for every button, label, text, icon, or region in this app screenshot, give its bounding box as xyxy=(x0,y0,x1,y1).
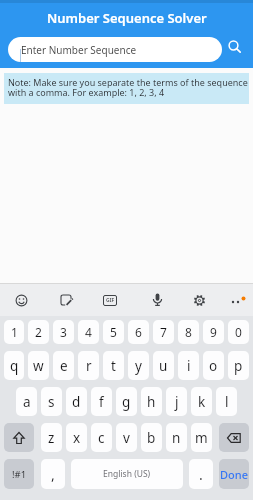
button[interactable]: , xyxy=(41,459,65,489)
button[interactable]: e xyxy=(53,351,74,380)
button[interactable] xyxy=(192,293,207,308)
staticText: English (US) xyxy=(103,468,151,480)
staticText: m xyxy=(195,429,208,447)
staticText: s xyxy=(48,393,55,411)
staticText: i xyxy=(187,357,191,375)
staticText: 2 xyxy=(35,324,42,340)
button[interactable]: GIF xyxy=(103,295,117,306)
button[interactable]: Done xyxy=(219,459,249,489)
button[interactable]: 2 xyxy=(28,320,49,344)
button[interactable]: 3 xyxy=(53,320,74,344)
staticText: Enter Number Sequence xyxy=(21,43,137,57)
staticText: h xyxy=(147,393,156,411)
staticText: 8 xyxy=(185,324,192,340)
staticText: k xyxy=(198,393,206,411)
staticText: d xyxy=(72,393,81,411)
staticText: Number Sequence Solver xyxy=(47,9,207,27)
staticText: q xyxy=(10,357,19,375)
staticText: u xyxy=(159,357,168,375)
button[interactable]: 1 xyxy=(4,320,24,344)
button[interactable]: b xyxy=(141,423,162,452)
button[interactable] xyxy=(219,423,249,452)
staticText: c xyxy=(98,429,105,447)
button[interactable]: f xyxy=(91,387,112,416)
button[interactable]: g xyxy=(116,387,137,416)
staticText: o xyxy=(209,357,218,375)
staticText: g xyxy=(122,393,131,411)
staticText: a xyxy=(23,393,31,411)
staticText: 9 xyxy=(210,324,217,340)
button[interactable]: u xyxy=(153,351,174,380)
button[interactable] xyxy=(14,293,29,308)
staticText: Note: Make sure you separate the terms o… xyxy=(8,76,248,99)
staticText: , xyxy=(51,465,55,484)
button[interactable]: Enter Number Sequence xyxy=(8,37,222,62)
staticText: 4 xyxy=(85,324,92,340)
staticText: 0 xyxy=(235,324,242,340)
staticText: 1 xyxy=(11,324,18,340)
button[interactable]: r xyxy=(78,351,99,380)
staticText: t xyxy=(111,357,116,375)
button[interactable] xyxy=(59,293,74,308)
staticText: j xyxy=(175,393,179,411)
button[interactable]: m xyxy=(191,423,212,452)
button[interactable]: d xyxy=(66,387,87,416)
button[interactable] xyxy=(228,293,248,308)
button[interactable]: w xyxy=(28,351,49,380)
button[interactable]: 7 xyxy=(153,320,174,344)
staticText: GIF xyxy=(106,297,115,304)
staticText: y xyxy=(135,357,142,375)
staticText: l xyxy=(225,393,229,411)
button[interactable]: a xyxy=(16,387,37,416)
button[interactable]: p xyxy=(228,351,249,380)
staticText: v xyxy=(123,429,130,447)
button[interactable]: v xyxy=(116,423,137,452)
button[interactable]: o xyxy=(203,351,224,380)
staticText: !#1 xyxy=(12,468,27,481)
button[interactable]: 9 xyxy=(203,320,224,344)
button[interactable]: English (US) xyxy=(71,459,183,489)
staticText: p xyxy=(234,357,243,375)
button[interactable]: 4 xyxy=(78,320,99,344)
button[interactable]: 5 xyxy=(103,320,124,344)
button[interactable]: n xyxy=(166,423,187,452)
button[interactable]: l xyxy=(216,387,237,416)
staticText: e xyxy=(60,357,68,375)
staticText: f xyxy=(99,393,104,411)
button[interactable]: . xyxy=(189,459,213,489)
button[interactable] xyxy=(226,38,244,56)
staticText: n xyxy=(172,429,181,447)
button[interactable]: y xyxy=(128,351,149,380)
button[interactable]: x xyxy=(66,423,87,452)
button[interactable]: !#1 xyxy=(4,459,34,489)
staticText: . xyxy=(199,465,203,484)
staticText: b xyxy=(147,429,156,447)
button[interactable]: 0 xyxy=(228,320,249,344)
staticText: x xyxy=(73,429,81,447)
staticText: 7 xyxy=(160,324,167,340)
button[interactable]: z xyxy=(41,423,62,452)
staticText: 6 xyxy=(135,324,142,340)
button[interactable]: 8 xyxy=(178,320,199,344)
button[interactable]: s xyxy=(41,387,62,416)
button[interactable]: j xyxy=(166,387,187,416)
button[interactable]: i xyxy=(178,351,199,380)
button[interactable]: c xyxy=(91,423,112,452)
button[interactable]: 6 xyxy=(128,320,149,344)
button[interactable] xyxy=(150,292,165,307)
staticText: 5 xyxy=(110,324,117,340)
button[interactable] xyxy=(4,423,34,452)
button[interactable]: k xyxy=(191,387,212,416)
button[interactable]: t xyxy=(103,351,124,380)
staticText: w xyxy=(33,357,44,375)
staticText: r xyxy=(86,357,92,375)
button[interactable]: q xyxy=(4,351,24,380)
staticText: Done xyxy=(220,467,248,482)
button[interactable]: h xyxy=(141,387,162,416)
staticText: z xyxy=(48,429,55,447)
staticText: 3 xyxy=(60,324,67,340)
